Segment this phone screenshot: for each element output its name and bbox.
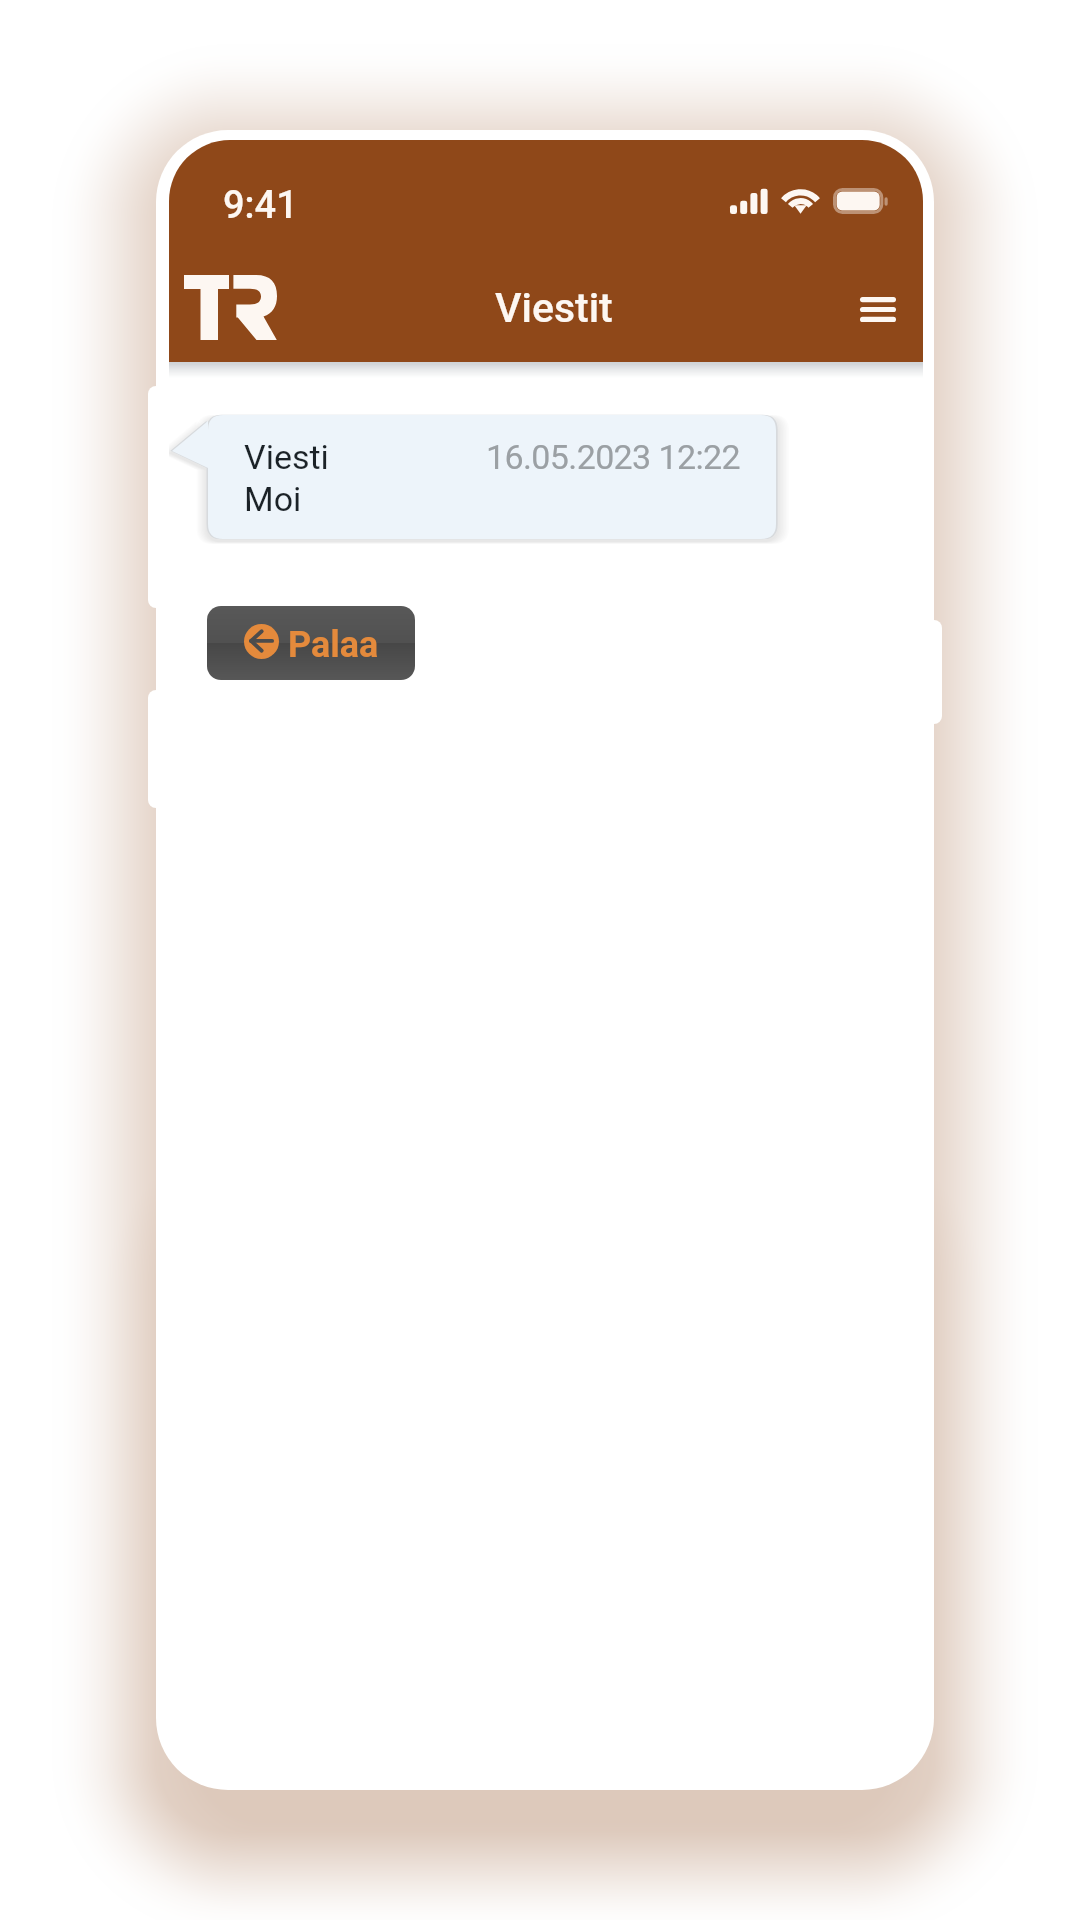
staticText: 16.05.2023 12:22 <box>486 437 740 477</box>
button[interactable]: Palaa <box>207 606 415 680</box>
staticText: Moi <box>244 479 302 519</box>
staticText: Palaa <box>288 624 379 666</box>
button[interactable]: Viesti <box>208 415 776 539</box>
button[interactable]: Menu <box>838 269 918 349</box>
staticText: Viestit <box>495 284 613 332</box>
staticText: Viesti <box>244 437 329 477</box>
button[interactable]: Home <box>169 258 292 344</box>
staticText: 9:41 <box>223 183 298 228</box>
